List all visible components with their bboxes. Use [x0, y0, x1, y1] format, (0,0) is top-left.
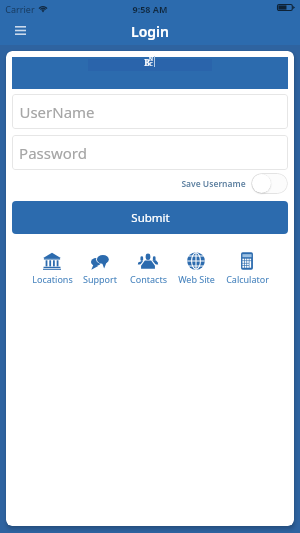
- button[interactable]: Contacts: [120, 252, 176, 285]
- staticText: UserName: [19, 102, 95, 122]
- button[interactable]: Calculator: [219, 252, 275, 285]
- staticText: C: [149, 61, 153, 68]
- button[interactable]: Menu: [9, 19, 31, 41]
- staticText: Locations: [32, 273, 73, 285]
- staticText: N: [149, 56, 153, 63]
- staticText: Save Username: [181, 178, 246, 190]
- button[interactable]: Support: [72, 252, 128, 285]
- button[interactable]: Submit: [12, 201, 288, 234]
- button[interactable]: Save Username: [181, 173, 288, 194]
- staticText: Carrier: [5, 3, 35, 15]
- button[interactable]: Save Username toggle: [251, 173, 288, 194]
- staticText: Web Site: [178, 273, 215, 285]
- button[interactable]: UserName: [12, 94, 288, 129]
- staticText: Login: [131, 22, 169, 41]
- staticText: Password: [19, 143, 87, 163]
- staticText: 9:58 AM: [132, 3, 168, 15]
- staticText: B: [144, 57, 150, 68]
- staticText: Contacts: [130, 273, 167, 285]
- button[interactable]: Web Site: [168, 252, 224, 285]
- button[interactable]: Password: [12, 135, 288, 170]
- button[interactable]: Locations: [24, 252, 80, 285]
- staticText: Calculator: [226, 273, 269, 285]
- staticText: Submit: [131, 210, 170, 226]
- staticText: Support: [83, 273, 117, 285]
